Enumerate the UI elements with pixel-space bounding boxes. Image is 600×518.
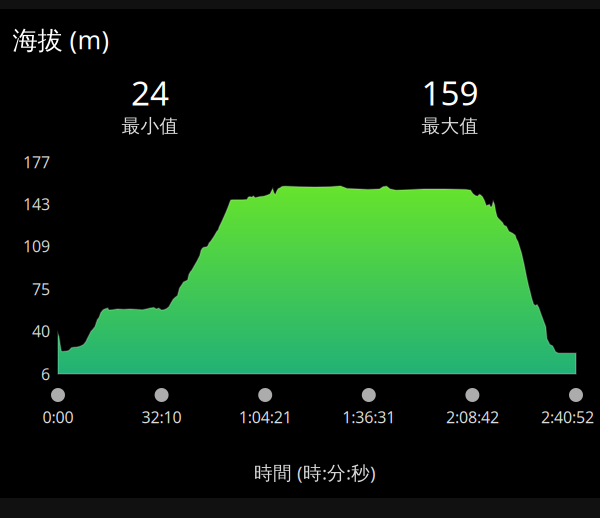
staticText: 2:40:52 (541, 406, 594, 428)
staticText: 32:10 (142, 406, 182, 428)
staticText: 1:36:31 (342, 406, 395, 428)
button[interactable]: 159 (421, 70, 478, 138)
staticText: 0:00 (42, 406, 73, 428)
staticText: 2:08:42 (446, 406, 499, 428)
staticText: 159 (421, 70, 478, 115)
staticText: 177 (23, 151, 50, 173)
button[interactable]: Time marker 32:10 (155, 388, 169, 402)
button[interactable]: Time marker 2:40:52 (569, 388, 583, 402)
staticText: 時間 (時:分:秒) (254, 460, 376, 485)
staticText: 40 (32, 320, 50, 342)
staticText: 1:04:21 (239, 406, 292, 428)
button[interactable]: Time marker 2:08:42 (465, 388, 479, 402)
staticText: 75 (32, 278, 50, 300)
button[interactable]: 24 (121, 70, 178, 138)
button[interactable]: Time marker 1:36:31 (362, 388, 376, 402)
staticText: 24 (131, 70, 169, 115)
staticText: 最大值 (421, 115, 478, 138)
staticText: 109 (23, 235, 50, 257)
button[interactable]: Time marker 0:00 (51, 388, 65, 402)
staticText: 最小值 (121, 115, 178, 138)
button[interactable]: Time marker 1:04:21 (258, 388, 272, 402)
staticText: 海拔 (m) (12, 23, 109, 56)
staticText: 6 (41, 363, 50, 385)
staticText: 143 (23, 193, 50, 215)
